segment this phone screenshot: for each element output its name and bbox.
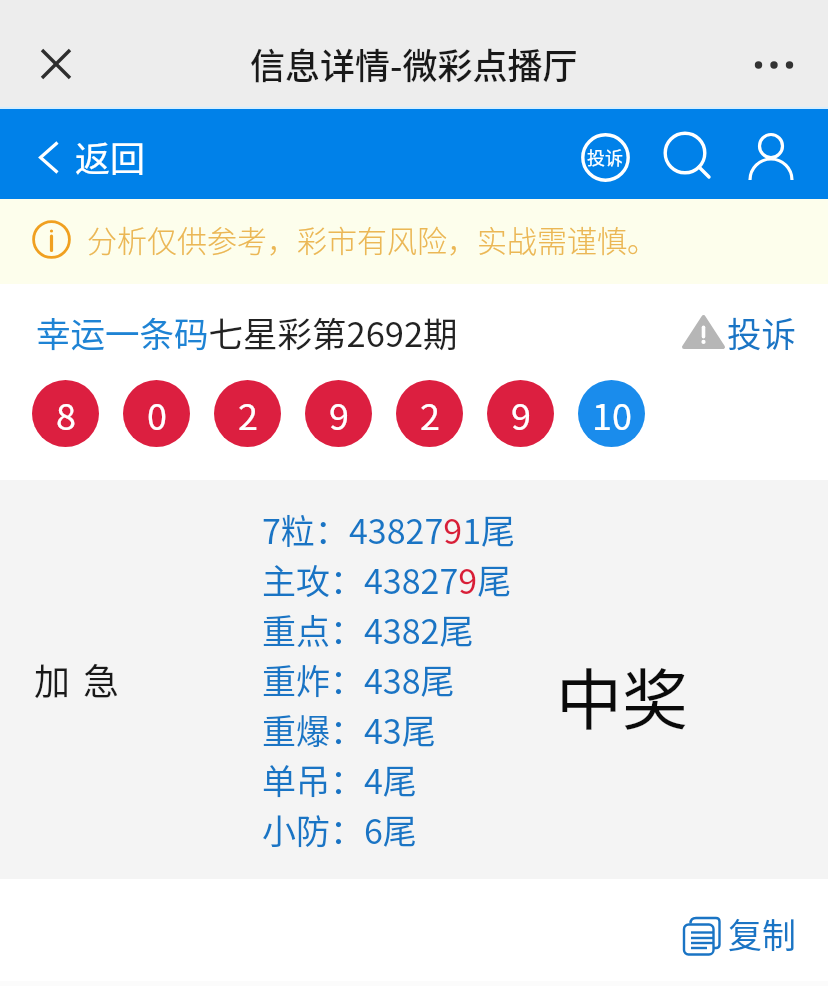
staticText: 幸运一条码七星彩第2692期 [36, 307, 458, 357]
staticText: 7粒： [262, 505, 349, 554]
staticText: 0 [147, 388, 167, 440]
staticText: 6尾 [364, 805, 417, 854]
staticText: 复制 [728, 909, 796, 958]
button[interactable]: 复制 [674, 912, 796, 961]
staticText: 2 [420, 388, 440, 440]
staticText: 重爆： [262, 705, 364, 754]
staticText: 急 [83, 653, 120, 705]
staticText: 投诉 [727, 307, 796, 357]
staticText: 4382791尾 [349, 505, 516, 554]
staticText: 4尾 [364, 755, 417, 804]
staticText: 438尾 [364, 655, 455, 704]
staticText: 中奖 [556, 647, 688, 743]
button[interactable]: 投诉 [684, 307, 796, 357]
staticText: 4382尾 [364, 605, 474, 654]
button[interactable]: 投诉 [575, 127, 635, 187]
staticText: 重炸： [262, 655, 364, 704]
staticText: 10 [592, 388, 632, 440]
staticText: 分析仅供参考，彩市有风险，实战需谨慎。 [87, 217, 657, 260]
staticText: 信息详情-微彩点播厅 [250, 38, 578, 89]
button[interactable]: Close [28, 36, 84, 92]
staticText: 主攻： [262, 555, 364, 604]
staticText: 返回 [75, 131, 146, 182]
staticText: 投诉 [587, 144, 623, 170]
staticText: 43尾 [364, 705, 436, 754]
staticText: 重点： [262, 605, 364, 654]
button[interactable]: Search [655, 123, 715, 183]
staticText: 小防： [262, 805, 364, 854]
staticText: 9 [329, 388, 349, 440]
button[interactable]: Profile [741, 124, 801, 184]
button[interactable]: 返回 [31, 124, 154, 191]
button[interactable]: More options [744, 35, 804, 95]
staticText: 8 [56, 388, 76, 440]
staticText: 438279尾 [364, 555, 512, 604]
staticText: 加 [34, 653, 71, 705]
staticText: 2 [238, 388, 258, 440]
staticText: 单吊： [262, 755, 364, 804]
staticText: 9 [511, 388, 531, 440]
